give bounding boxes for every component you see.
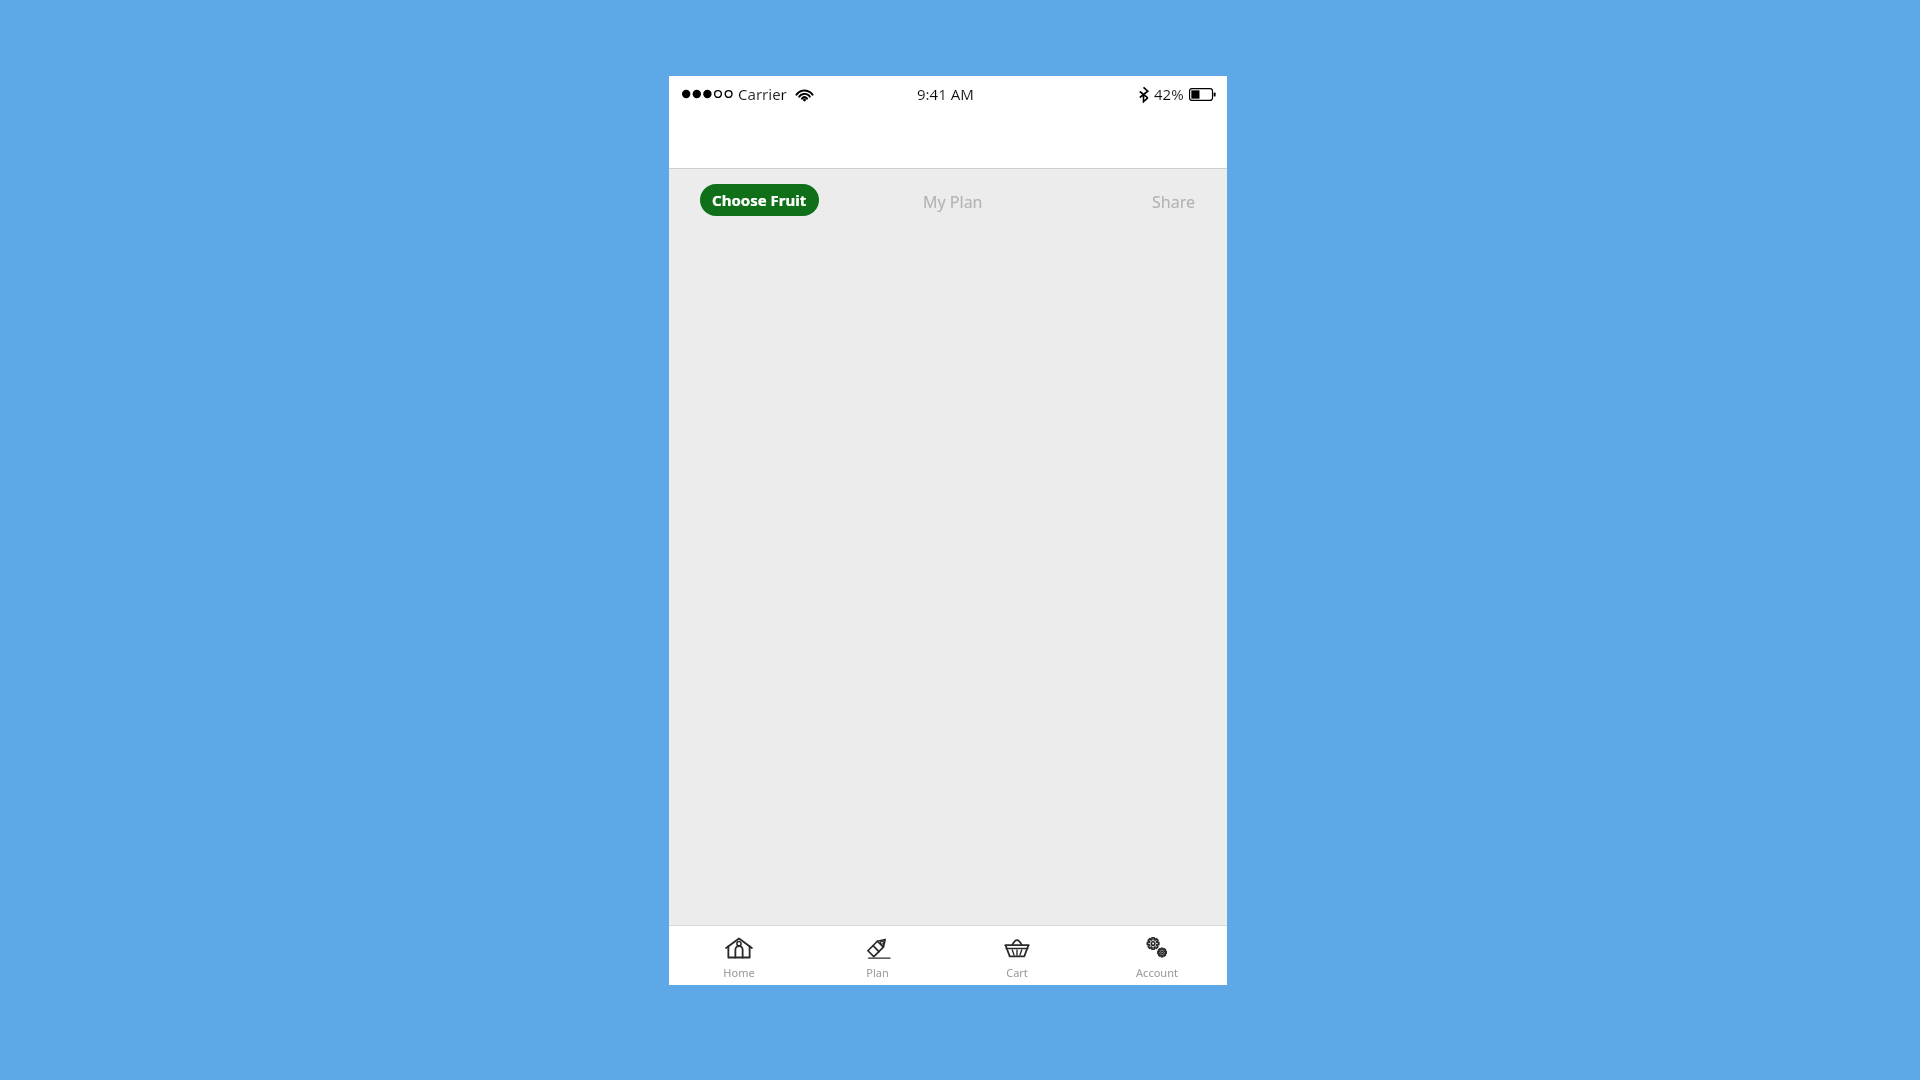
button[interactable]: My Plan <box>909 183 997 221</box>
staticText: 9:41 AM <box>917 84 974 104</box>
staticText: Choose Fruit <box>712 190 807 210</box>
button[interactable]: Share <box>1138 183 1209 221</box>
staticText: Share <box>1152 191 1195 213</box>
staticText: Home <box>723 965 755 980</box>
button[interactable]: Choose Fruit <box>700 184 819 216</box>
staticText: My Plan <box>923 191 983 213</box>
staticText: Account <box>1136 965 1178 980</box>
staticText: Carrier <box>738 84 787 104</box>
staticText: 42% <box>1154 84 1184 104</box>
button[interactable]: Plan <box>808 926 947 985</box>
staticText: Cart <box>1006 965 1028 980</box>
button[interactable]: Cart <box>947 926 1087 985</box>
staticText: Plan <box>866 965 889 980</box>
button[interactable]: Home <box>669 926 808 985</box>
button[interactable]: Account <box>1087 926 1227 985</box>
